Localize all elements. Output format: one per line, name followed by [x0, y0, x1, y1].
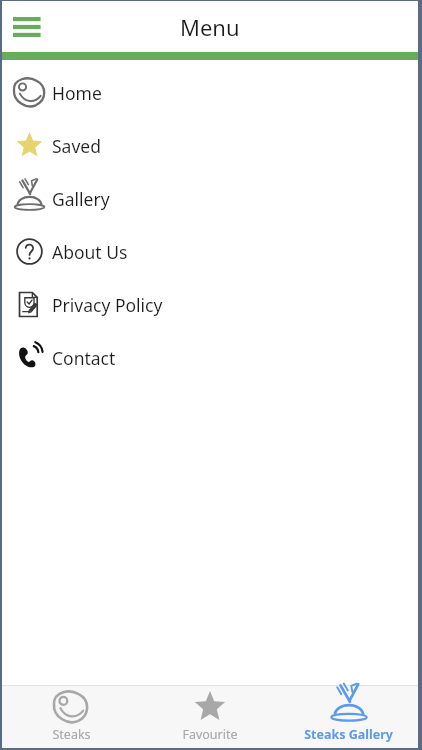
- staticText: Gallery: [52, 187, 110, 211]
- staticText: Steaks Gallery: [304, 726, 393, 743]
- button[interactable]: Saved: [2, 119, 418, 172]
- button[interactable]: Steaks Gallery: [279, 685, 418, 748]
- button[interactable]: Favourite: [140, 685, 279, 748]
- button[interactable]: Privacy Policy: [2, 278, 418, 331]
- button[interactable]: About Us: [2, 225, 418, 278]
- button[interactable]: Contact: [2, 331, 418, 384]
- staticText: About Us: [52, 240, 128, 264]
- button[interactable]: Home: [2, 66, 418, 119]
- staticText: Favourite: [182, 726, 238, 743]
- button[interactable]: Steaks: [2, 685, 140, 748]
- button[interactable]: Gallery: [2, 172, 418, 225]
- staticText: Home: [52, 81, 102, 105]
- staticText: Menu: [180, 12, 240, 42]
- staticText: Saved: [52, 134, 101, 158]
- button[interactable]: Open navigation menu: [6, 5, 50, 49]
- staticText: Privacy Policy: [52, 293, 163, 317]
- staticText: Contact: [52, 346, 116, 370]
- staticText: Steaks: [52, 726, 91, 743]
